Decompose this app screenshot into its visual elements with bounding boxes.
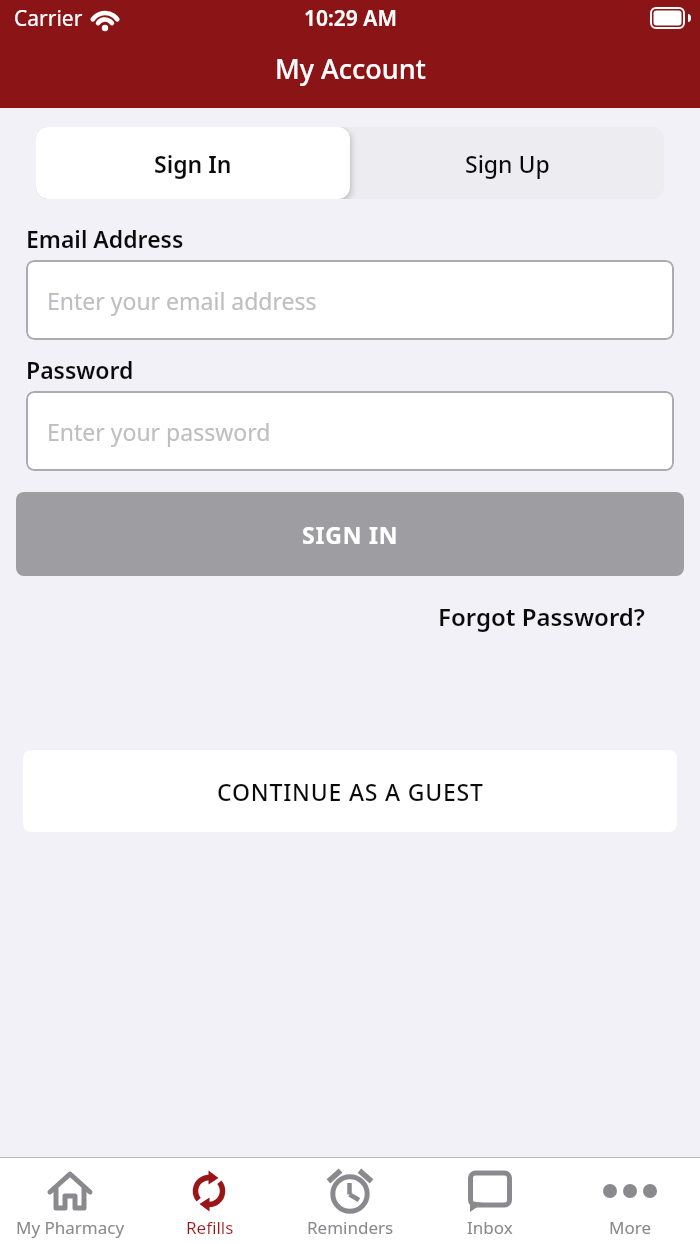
staticText: CONTINUE AS A GUEST: [217, 776, 484, 807]
staticText: My Account: [275, 50, 426, 87]
button[interactable]: Sign In: [36, 127, 350, 199]
staticText: Enter your password: [47, 416, 271, 447]
button[interactable]: More: [560, 1158, 700, 1244]
staticText: Email Address: [26, 223, 184, 254]
staticText: Password: [26, 354, 134, 385]
staticText: Carrier: [14, 4, 83, 33]
staticText: 10:29 AM: [304, 4, 397, 33]
button[interactable]: Reminders: [280, 1158, 420, 1244]
button[interactable]: CONTINUE AS A GUEST: [23, 750, 677, 832]
staticText: Sign In: [154, 148, 232, 179]
staticText: Sign Up: [465, 148, 550, 179]
staticText: Inbox: [467, 1216, 513, 1239]
button[interactable]: SIGN IN: [16, 492, 684, 576]
button[interactable]: Forgot Password?: [438, 600, 645, 633]
button[interactable]: Inbox: [420, 1158, 560, 1244]
button[interactable]: My Pharmacy: [0, 1158, 140, 1244]
staticText: My Pharmacy: [16, 1216, 125, 1239]
button[interactable]: Sign Up: [350, 127, 664, 199]
staticText: Reminders: [307, 1216, 394, 1239]
staticText: More: [609, 1216, 651, 1239]
staticText: SIGN IN: [302, 519, 399, 550]
staticText: Refills: [186, 1216, 234, 1239]
button[interactable]: Refills: [140, 1158, 280, 1244]
staticText: Enter your email address: [47, 285, 317, 316]
